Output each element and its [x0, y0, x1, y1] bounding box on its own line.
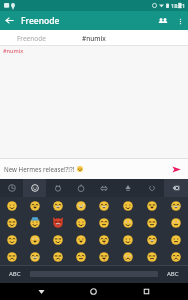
button[interactable]: Emoji — [92, 248, 116, 265]
button[interactable]: Emoji — [23, 197, 46, 214]
staticText: 18:21 — [171, 2, 186, 9]
button[interactable]: Smileys — [23, 179, 46, 197]
button[interactable]: Emoji — [0, 248, 23, 265]
button[interactable]: Emoji — [116, 214, 140, 231]
button[interactable]: Emoji — [23, 248, 46, 265]
button[interactable]: Emoji — [140, 214, 164, 231]
button[interactable]: Emoji — [164, 214, 188, 231]
staticText: Freenode — [21, 15, 60, 27]
button[interactable]: Emoji — [140, 231, 164, 248]
button[interactable]: ABC — [0, 265, 30, 283]
button[interactable]: Emoji — [164, 197, 188, 214]
staticText: ABC — [9, 270, 21, 278]
button[interactable]: Backspace — [164, 179, 188, 197]
staticText: New Hermes release!?!?! — [4, 165, 75, 173]
button[interactable]: Recent — [0, 179, 23, 197]
button[interactable]: Send — [168, 161, 184, 177]
button[interactable]: Recents — [135, 283, 157, 300]
button[interactable]: Home — [82, 283, 104, 300]
button[interactable]: Emoji — [46, 197, 69, 214]
button[interactable]: Travel — [92, 179, 116, 197]
button[interactable]: Back — [0, 11, 19, 30]
button[interactable]: Emoji — [69, 197, 92, 214]
button[interactable]: Food — [69, 179, 92, 197]
button[interactable]: Emoji — [23, 231, 46, 248]
button[interactable]: Emoji — [46, 248, 69, 265]
button[interactable]: Objects — [116, 179, 140, 197]
staticText: #numix — [82, 34, 106, 43]
button[interactable]: Emoji — [46, 214, 69, 231]
button[interactable]: More options — [172, 13, 188, 29]
button[interactable]: Emoji — [92, 214, 116, 231]
button[interactable]: Animals — [46, 179, 69, 197]
button[interactable]: Emoji — [46, 231, 69, 248]
button[interactable]: Freenode — [0, 30, 62, 46]
button[interactable]: Emoji — [0, 214, 23, 231]
button[interactable]: Symbols — [140, 179, 164, 197]
button[interactable]: #numix — [62, 30, 125, 46]
button[interactable]: ABC — [158, 265, 188, 283]
button[interactable]: Emoji — [164, 231, 188, 248]
button[interactable]: Emoji — [92, 197, 116, 214]
button[interactable]: Emoji — [69, 248, 92, 265]
button[interactable]: People — [153, 11, 172, 30]
button[interactable]: Emoji — [164, 248, 188, 265]
button[interactable]: Emoji — [140, 248, 164, 265]
button[interactable]: Emoji — [0, 197, 23, 214]
staticText: #numix — [3, 47, 24, 54]
button[interactable]: Emoji — [92, 231, 116, 248]
button[interactable]: Back — [30, 283, 52, 300]
button[interactable]: Emoji — [140, 197, 164, 214]
staticText: Freenode — [17, 34, 46, 43]
button[interactable]: Emoji — [69, 231, 92, 248]
staticText: ABC — [167, 270, 179, 278]
button[interactable]: Emoji — [23, 214, 46, 231]
button[interactable]: Emoji — [116, 248, 140, 265]
button[interactable]: Emoji — [69, 214, 92, 231]
button[interactable]: Emoji — [116, 197, 140, 214]
button[interactable]: Emoji — [0, 231, 23, 248]
button[interactable]: Emoji — [116, 231, 140, 248]
